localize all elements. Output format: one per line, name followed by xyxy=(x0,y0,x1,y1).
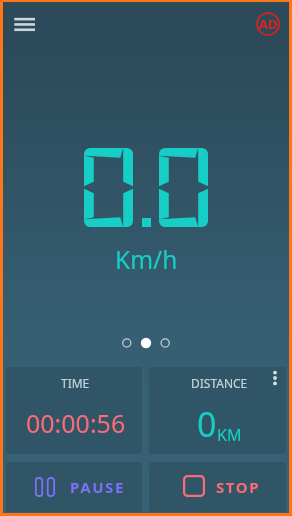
staticText: 00:00:56 xyxy=(26,406,126,440)
button[interactable]: TIME xyxy=(6,367,142,454)
button[interactable]: Remove ads xyxy=(252,8,284,40)
button[interactable]: STOP xyxy=(149,462,286,512)
staticText: 0 xyxy=(197,401,217,447)
staticText: STOP xyxy=(216,477,261,497)
staticText: DISTANCE xyxy=(191,375,248,391)
button[interactable]: PAUSE xyxy=(6,462,142,512)
staticText: Km/h xyxy=(115,243,178,276)
staticText: TIME xyxy=(61,375,90,391)
staticText: AD xyxy=(259,15,278,33)
staticText: KM xyxy=(217,424,242,446)
button[interactable]: More options xyxy=(266,369,284,387)
staticText: PAUSE xyxy=(70,477,125,497)
button[interactable]: Menu xyxy=(7,4,42,39)
button[interactable]: DISTANCE xyxy=(149,367,286,454)
